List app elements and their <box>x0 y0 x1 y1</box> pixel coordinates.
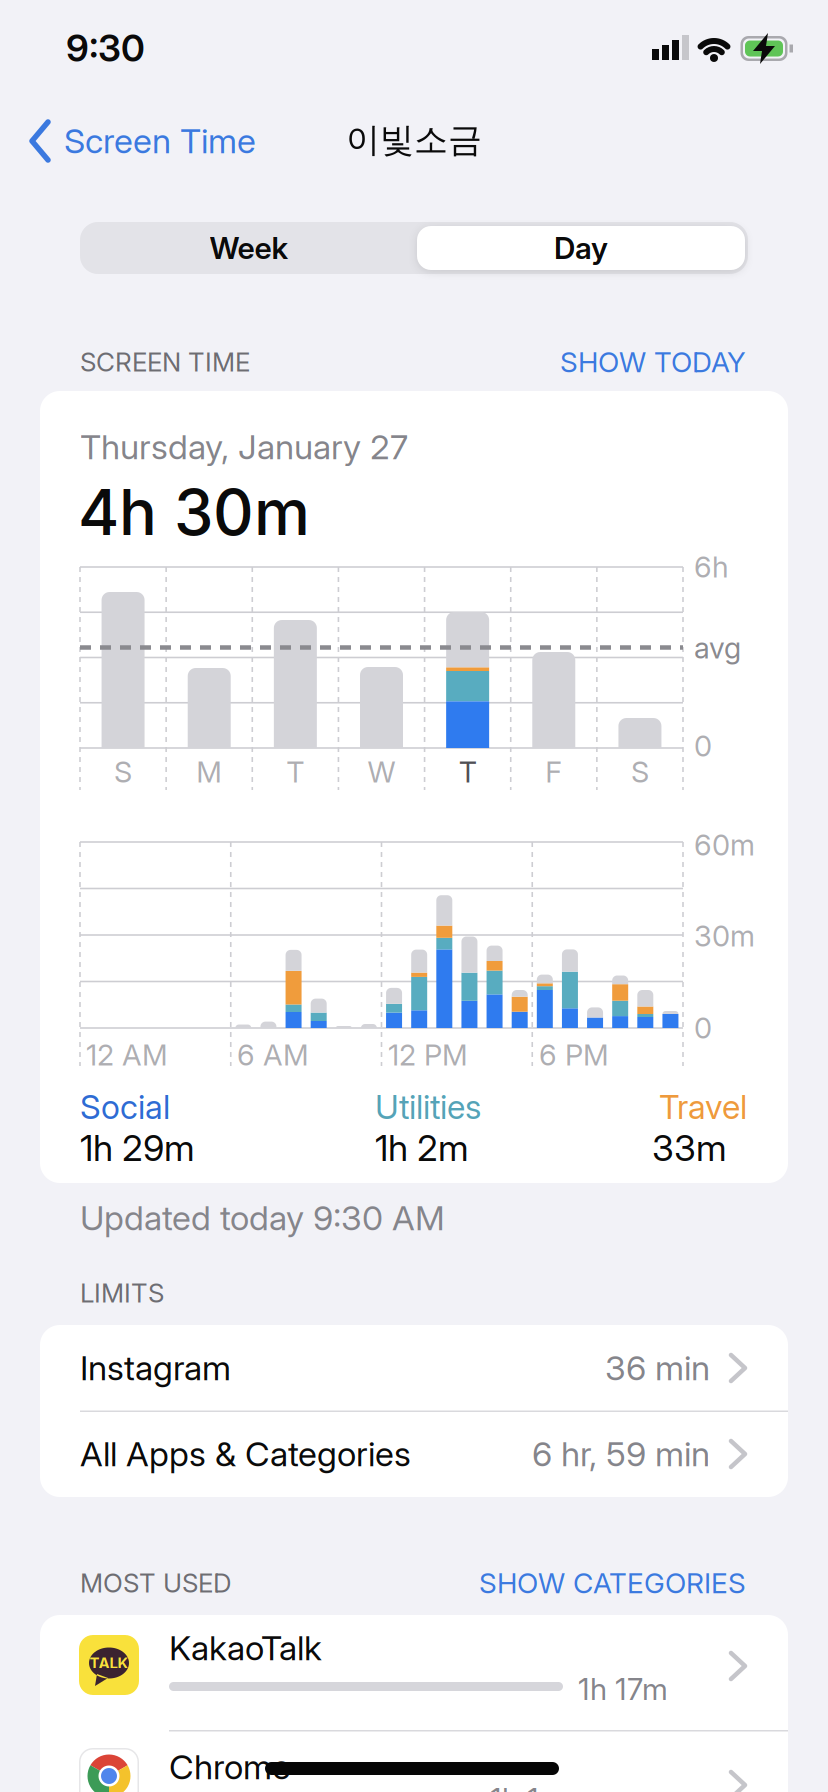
staticText: 33m <box>652 1126 727 1170</box>
staticText: 0 <box>694 1010 712 1046</box>
button[interactable]: Day <box>416 222 746 274</box>
staticText: 9:30 <box>66 26 145 70</box>
button[interactable]: Chrome <box>40 1731 788 1792</box>
button[interactable]: Back <box>28 113 328 169</box>
button[interactable]: SHOW TODAY <box>506 340 746 384</box>
staticText: 1h 2m <box>375 1126 469 1170</box>
staticText: Instagram <box>80 1347 231 1388</box>
staticText: SCREEN TIME <box>80 346 250 378</box>
button[interactable]: TALK <box>40 1615 788 1731</box>
staticText: 0 <box>694 728 712 764</box>
staticText: Travel <box>659 1087 747 1127</box>
button[interactable]: Week <box>84 222 414 274</box>
staticText: 12 PM <box>388 1037 468 1073</box>
staticText: 30m <box>694 918 755 954</box>
staticText: Utilities <box>375 1087 481 1127</box>
staticText: MOST USED <box>80 1567 232 1599</box>
staticText: F <box>545 754 562 790</box>
staticText: 1h 1m <box>490 1781 565 1792</box>
staticText: 6 AM <box>237 1037 309 1073</box>
staticText: Day <box>554 230 608 266</box>
staticText: 1h 17m <box>578 1671 668 1707</box>
staticText: 6 PM <box>539 1037 609 1073</box>
staticText: 이빛소금 <box>346 119 482 161</box>
staticText: T <box>459 754 477 790</box>
staticText: S <box>114 754 132 790</box>
staticText: S <box>631 754 649 790</box>
staticText: avg <box>694 630 741 666</box>
staticText: TALK <box>89 1654 128 1672</box>
staticText: KakaoTalk <box>169 1627 322 1668</box>
staticText: 6 hr, 59 min <box>532 1433 710 1474</box>
staticText: SHOW TODAY <box>560 345 746 379</box>
staticText: 6h <box>694 549 729 585</box>
staticText: Updated today 9:30 AM <box>80 1197 445 1238</box>
staticText: SHOW CATEGORIES <box>479 1566 746 1600</box>
staticText: Chrome <box>169 1746 291 1787</box>
staticText: 36 min <box>605 1347 710 1388</box>
staticText: LIMITS <box>80 1277 164 1309</box>
staticText: T <box>286 754 304 790</box>
button[interactable]: Instagram <box>40 1325 788 1411</box>
staticText: Screen Time <box>64 120 256 161</box>
staticText: 4h 30m <box>78 474 310 550</box>
staticText: Week <box>209 230 288 266</box>
button[interactable]: SHOW CATEGORIES <box>466 1561 746 1605</box>
staticText: 12 AM <box>86 1037 168 1073</box>
staticText: Thursday, January 27 <box>80 426 408 467</box>
staticText: M <box>196 754 222 790</box>
staticText: W <box>367 754 395 790</box>
staticText: 1h 29m <box>80 1126 195 1170</box>
staticText: 60m <box>694 827 755 863</box>
staticText: All Apps & Categories <box>80 1433 411 1474</box>
staticText: Social <box>80 1087 170 1127</box>
button[interactable]: All Apps & Categories <box>40 1411 788 1497</box>
